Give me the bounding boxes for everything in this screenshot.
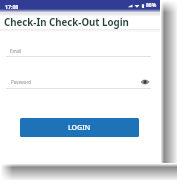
- staticText: Email: [10, 48, 22, 54]
- staticText: Password: [11, 79, 31, 85]
- staticText: 17:08: [5, 3, 19, 10]
- button[interactable]: LOGIN: [20, 118, 139, 137]
- staticText: LOGIN: [68, 123, 91, 133]
- staticText: 86%: [146, 2, 157, 9]
- button[interactable]: Show password: [139, 76, 151, 88]
- staticText: Check-In Check-Out Login: [4, 16, 129, 29]
